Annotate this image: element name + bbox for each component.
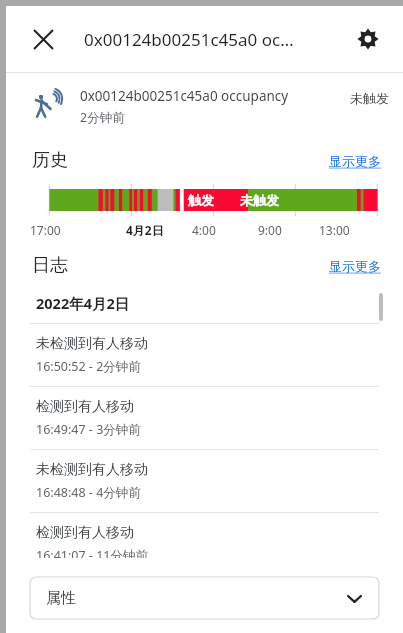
- button[interactable]: 未检测到有人移动: [6, 324, 403, 386]
- staticText: 16:48:48 - 4分钟前: [36, 484, 141, 501]
- staticText: 13:00: [319, 222, 350, 238]
- staticText: 未检测到有人移动: [36, 461, 148, 479]
- staticText: 4月2日: [126, 222, 164, 238]
- button[interactable]: 检测到有人移动: [6, 387, 403, 449]
- staticText: 9:00: [258, 222, 282, 238]
- button[interactable]: 0x00124b00251c45a0 occupancy: [6, 73, 403, 139]
- button[interactable]: 显示更多: [329, 258, 381, 274]
- staticText: 16:41:07 - 11分钟前: [36, 547, 148, 558]
- staticText: 未检测到有人移动: [36, 335, 148, 353]
- button[interactable]: Settings: [345, 16, 391, 62]
- staticText: 0x00124b00251c45a0 occu...: [84, 28, 299, 51]
- staticText: 4:00: [192, 222, 216, 238]
- staticText: 检测到有人移动: [36, 398, 134, 416]
- staticText: 历史: [32, 149, 68, 172]
- staticText: 日志: [32, 254, 68, 277]
- staticText: 2022年4月2日: [36, 293, 130, 313]
- staticText: 显示更多: [329, 258, 381, 274]
- button[interactable]: 未检测到有人移动: [6, 450, 403, 512]
- staticText: 2分钟前: [80, 109, 125, 126]
- button[interactable]: 属性: [30, 577, 379, 619]
- staticText: 检测到有人移动: [36, 524, 134, 542]
- staticText: 触发: [188, 192, 214, 208]
- staticText: 0x00124b00251c45a0 occupancy: [80, 87, 289, 105]
- button[interactable]: Close: [20, 16, 66, 62]
- staticText: 17:00: [30, 222, 61, 238]
- staticText: 16:50:52 - 2分钟前: [36, 358, 141, 375]
- staticText: 显示更多: [329, 153, 381, 169]
- staticText: 16:49:47 - 3分钟前: [36, 421, 141, 438]
- staticText: 属性: [46, 589, 76, 608]
- button[interactable]: 检测到有人移动: [6, 513, 403, 569]
- staticText: 未触发: [350, 90, 389, 106]
- staticText: 未触发: [240, 192, 279, 208]
- button[interactable]: 显示更多: [329, 153, 381, 169]
